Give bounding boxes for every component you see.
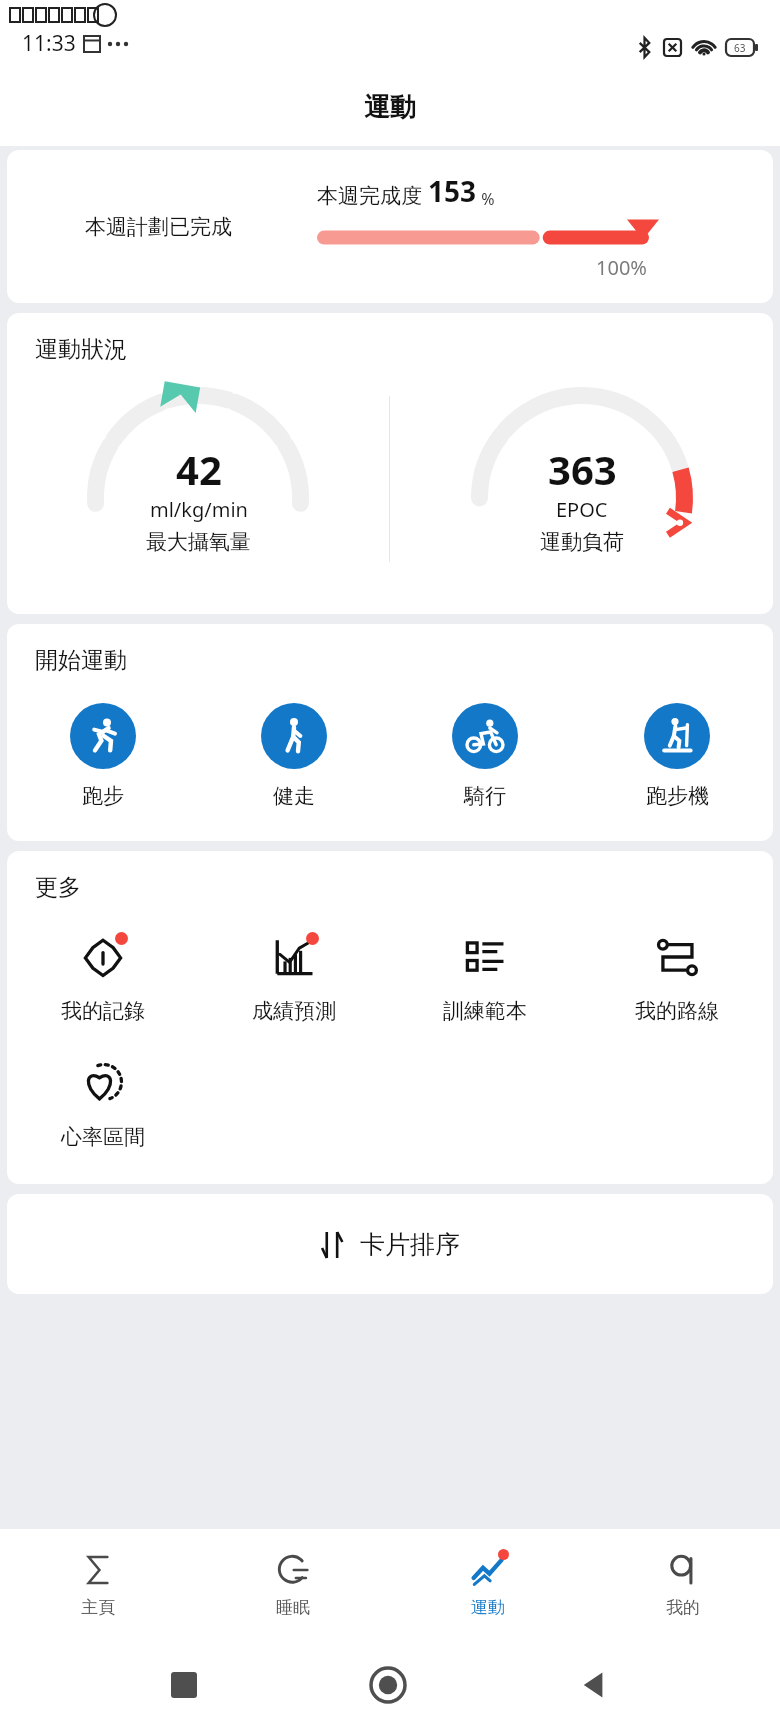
staticText: 跑步機 bbox=[646, 783, 709, 809]
button[interactable]: 我的路線 bbox=[581, 930, 773, 1024]
staticText: 42 bbox=[176, 442, 222, 496]
button[interactable]: 卡片排序 bbox=[7, 1194, 773, 1294]
button[interactable]: 訓練範本 bbox=[389, 930, 581, 1024]
staticText: 健走 bbox=[273, 783, 315, 809]
button[interactable]: Recents bbox=[169, 1670, 199, 1700]
button[interactable]: 主頁 bbox=[0, 1529, 195, 1637]
button[interactable]: Home bbox=[368, 1665, 408, 1705]
staticText: 我的路線 bbox=[635, 998, 719, 1024]
staticText: % bbox=[477, 188, 495, 210]
staticText: 運動 bbox=[364, 91, 416, 124]
staticText: 跑步 bbox=[82, 783, 124, 809]
staticText: 運動狀況 bbox=[35, 335, 127, 364]
staticText: 卡片排序 bbox=[360, 1229, 460, 1260]
staticText: 本週計劃已完成 bbox=[85, 214, 232, 240]
button[interactable]: 心率區間 bbox=[7, 1056, 198, 1150]
staticText: 運動 bbox=[471, 1597, 505, 1618]
staticText: 363 bbox=[548, 442, 617, 496]
staticText: 153 bbox=[428, 172, 477, 210]
button[interactable]: 運動 bbox=[390, 1529, 585, 1637]
button[interactable]: 健走 bbox=[198, 701, 389, 811]
staticText: 我的記錄 bbox=[61, 998, 145, 1024]
staticText: 63 bbox=[734, 41, 746, 55]
staticText: 開始運動 bbox=[35, 646, 127, 675]
staticText: 更多 bbox=[35, 873, 81, 902]
staticText: 運動負荷 bbox=[540, 529, 624, 555]
staticText: 成績預測 bbox=[252, 998, 336, 1024]
button[interactable]: 我的 bbox=[585, 1529, 780, 1637]
button[interactable]: 騎行 bbox=[389, 701, 581, 811]
button[interactable]: 本週計劃已完成 bbox=[7, 150, 773, 303]
staticText: 騎行 bbox=[464, 783, 506, 809]
staticText: 主頁 bbox=[81, 1597, 115, 1618]
staticText: 本週完成度 bbox=[317, 181, 428, 210]
button[interactable]: Back bbox=[577, 1668, 611, 1702]
button[interactable]: 跑步 bbox=[7, 701, 198, 811]
staticText: 我的 bbox=[666, 1597, 700, 1618]
staticText: 11:33 bbox=[22, 29, 76, 58]
staticText: 心率區間 bbox=[61, 1124, 145, 1150]
button[interactable]: 跑步機 bbox=[581, 701, 773, 811]
button[interactable]: 成績預測 bbox=[198, 930, 389, 1024]
staticText: 睡眠 bbox=[276, 1597, 310, 1618]
staticText: 最大攝氧量 bbox=[146, 529, 251, 555]
staticText: 訓練範本 bbox=[443, 998, 527, 1024]
staticText: 100% bbox=[596, 254, 647, 281]
staticText: EPOC bbox=[556, 496, 608, 523]
button[interactable]: 睡眠 bbox=[195, 1529, 390, 1637]
staticText: ml/kg/min bbox=[150, 496, 248, 523]
button[interactable]: 我的記錄 bbox=[7, 930, 198, 1024]
